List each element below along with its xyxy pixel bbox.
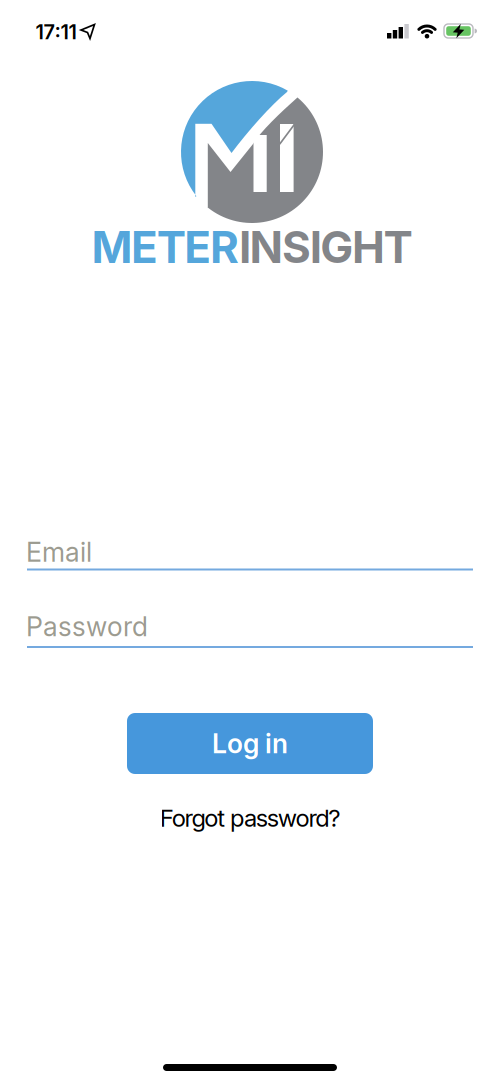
staticText: Forgot password?: [160, 804, 340, 832]
textField[interactable]: Password: [26, 611, 245, 642]
staticText: Email: [26, 536, 92, 568]
button[interactable]: Forgot password?: [160, 804, 340, 832]
staticText: METER: [91, 221, 239, 273]
staticText: Log in: [212, 728, 288, 759]
staticText: INSIGHT: [239, 221, 412, 273]
button[interactable]: Log in: [127, 713, 373, 774]
textField[interactable]: Email: [26, 536, 245, 568]
staticText: 17:11: [35, 20, 76, 44]
staticText: Password: [26, 611, 148, 642]
